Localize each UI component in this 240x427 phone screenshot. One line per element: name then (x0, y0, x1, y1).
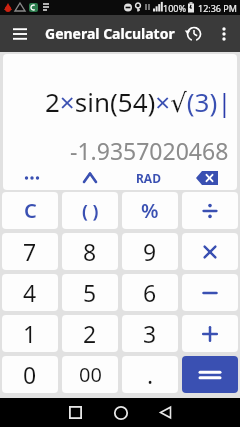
button[interactable]: 5 (62, 274, 118, 311)
button[interactable]: 1 (2, 315, 58, 352)
staticText: 9 (143, 236, 157, 267)
staticText: 5 (83, 277, 97, 308)
button[interactable] (6, 20, 34, 48)
button[interactable]: ( ) (62, 192, 118, 229)
button[interactable] (182, 192, 238, 229)
staticText: . (147, 359, 154, 390)
staticText: 2×sin(54)×√(3)| (45, 84, 232, 119)
staticText: 12:36 PM (198, 2, 237, 14)
button[interactable] (182, 315, 238, 352)
button[interactable] (178, 166, 237, 190)
staticText: 7 (23, 236, 37, 267)
button[interactable]: 9 (122, 233, 178, 270)
staticText: ( ) (82, 199, 99, 223)
button[interactable]: C (2, 192, 58, 229)
button[interactable] (61, 166, 119, 190)
staticText: -1.9357020468 (70, 135, 229, 166)
staticText: 8 (83, 236, 97, 267)
staticText: 3 (143, 318, 157, 349)
button[interactable]: 4 (2, 274, 58, 311)
button[interactable] (212, 22, 236, 46)
staticText: 0 (23, 359, 37, 390)
staticText: 6 (143, 277, 157, 308)
button[interactable] (182, 356, 238, 393)
staticText: 4 (23, 277, 37, 308)
staticText: RAD (136, 170, 161, 186)
button[interactable]: 00 (62, 356, 118, 393)
button[interactable] (180, 21, 206, 47)
staticText: 2 (83, 318, 97, 349)
button[interactable]: % (122, 192, 178, 229)
staticText: 100% (163, 2, 186, 14)
button[interactable] (98, 398, 143, 427)
button[interactable]: RAD (119, 166, 178, 190)
button[interactable] (182, 274, 238, 311)
button[interactable]: 3 (122, 315, 178, 352)
button[interactable]: 7 (2, 233, 58, 270)
button[interactable] (3, 166, 61, 190)
staticText: 00 (79, 361, 102, 388)
button[interactable] (143, 398, 188, 427)
button[interactable]: 0 (2, 356, 58, 393)
staticText: % (141, 197, 159, 224)
button[interactable] (182, 233, 238, 270)
button[interactable] (53, 398, 98, 427)
button[interactable]: 8 (62, 233, 118, 270)
staticText: 1 (23, 318, 37, 349)
button[interactable]: 6 (122, 274, 178, 311)
staticText: General Calculator (45, 24, 175, 43)
button[interactable]: 2 (62, 315, 118, 352)
staticText: C (24, 197, 37, 224)
button[interactable]: . (122, 356, 178, 393)
